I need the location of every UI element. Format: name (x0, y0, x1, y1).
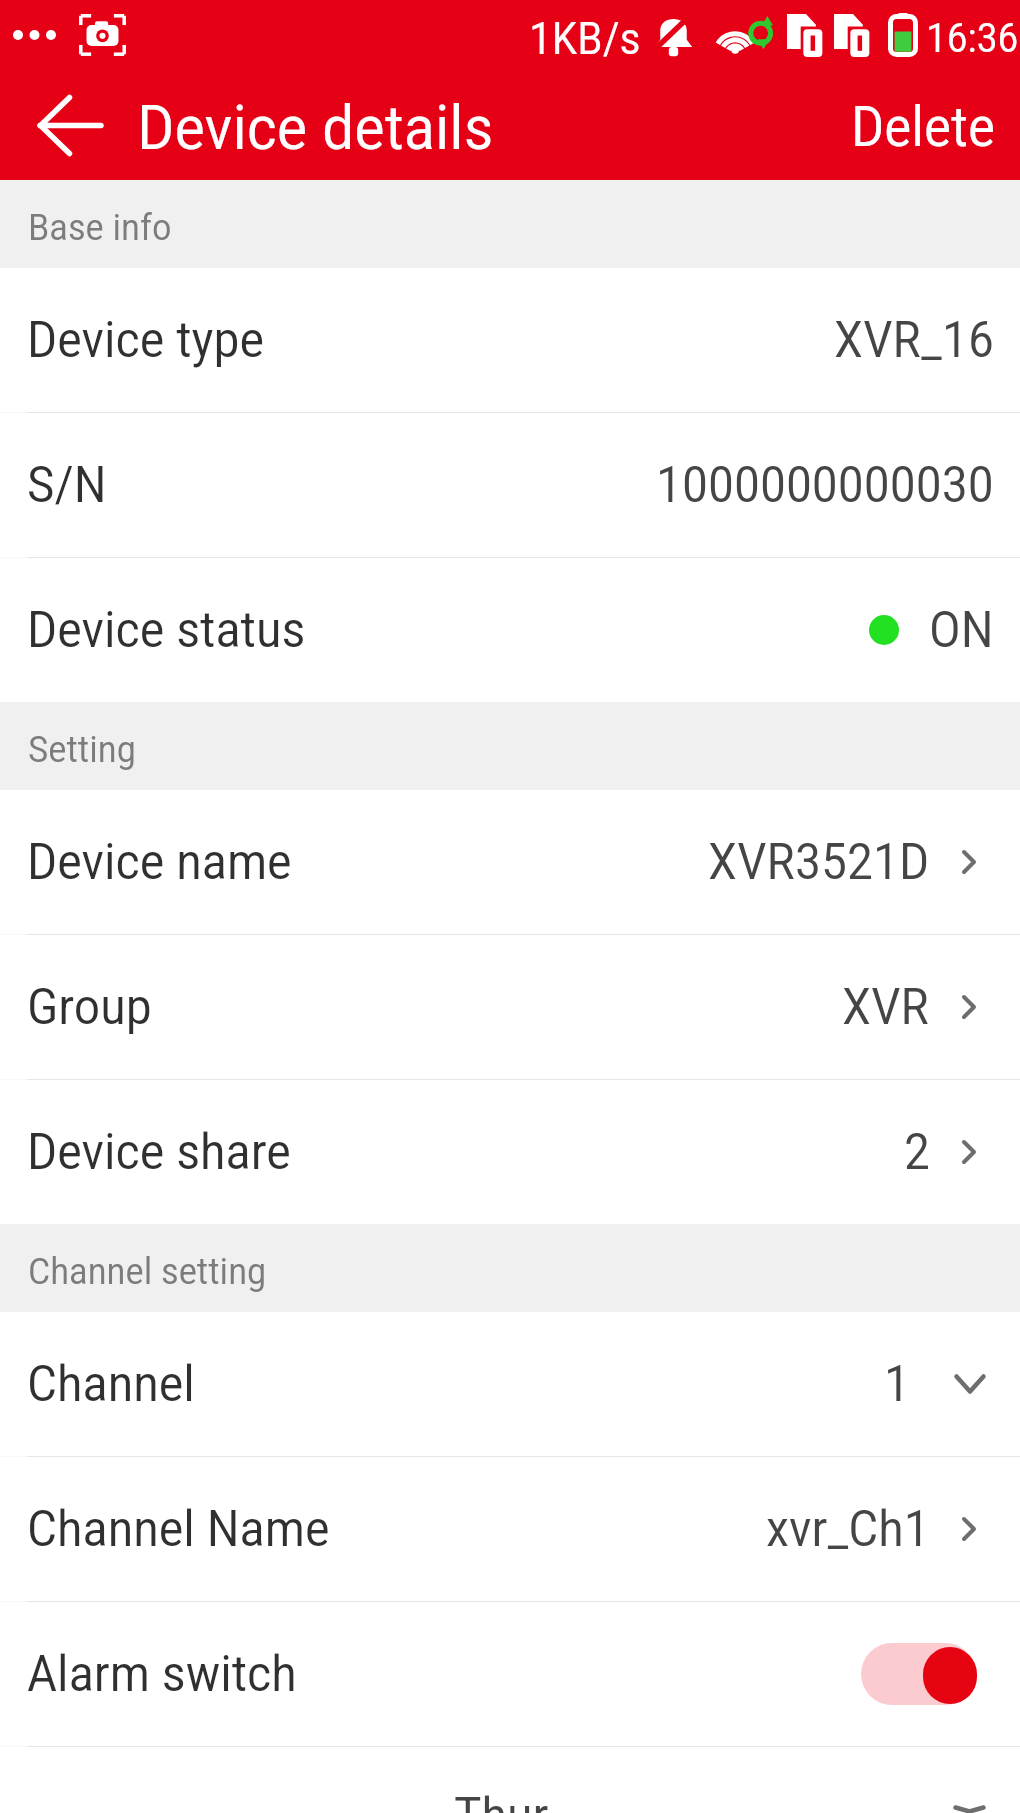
staticText: Thur (454, 1787, 549, 1813)
button[interactable]: Device type (0, 268, 1020, 412)
button[interactable]: Device status (0, 558, 1020, 702)
staticText: 16:36 (926, 15, 1019, 62)
staticText: Device status (27, 601, 306, 660)
staticText: Alarm switch (27, 1645, 297, 1704)
button[interactable]: Device name (0, 790, 1020, 934)
button[interactable]: Device share (0, 1080, 1020, 1224)
staticText: XVR_16 (834, 311, 994, 370)
button[interactable]: Channel Name (0, 1457, 1020, 1601)
staticText: Channel (27, 1355, 195, 1414)
button[interactable]: Group (0, 935, 1020, 1079)
staticText: Group (27, 978, 152, 1037)
button[interactable]: Thur (0, 1747, 1020, 1813)
button[interactable]: Delete (823, 78, 1020, 180)
staticText: Device details (137, 91, 494, 164)
staticText: 1000000000030 (656, 456, 994, 515)
staticText: 2 (904, 1123, 930, 1182)
button[interactable]: Channel (0, 1312, 1020, 1456)
staticText: Device type (27, 311, 264, 370)
button[interactable]: Alarm switch (0, 1602, 1020, 1746)
staticText: Channel Name (27, 1500, 330, 1559)
staticText: ON (929, 601, 994, 660)
staticText: Device name (27, 833, 292, 892)
staticText: 1 (884, 1355, 910, 1414)
button[interactable]: S/N (0, 413, 1020, 557)
staticText: S/N (27, 456, 107, 515)
staticText: XVR (842, 978, 930, 1037)
staticText: Device share (27, 1123, 291, 1182)
staticText: Base info (28, 206, 172, 249)
staticText: Channel setting (28, 1250, 267, 1293)
button[interactable]: Back (0, 78, 140, 180)
staticText: Setting (28, 728, 136, 771)
staticText: XVR3521D (708, 833, 930, 892)
staticText: 1KB/s (529, 13, 641, 65)
staticText: xvr_Ch1 (766, 1500, 930, 1559)
button[interactable]: Alarm switch toggle, on (861, 1642, 977, 1706)
staticText: Delete (851, 95, 995, 159)
